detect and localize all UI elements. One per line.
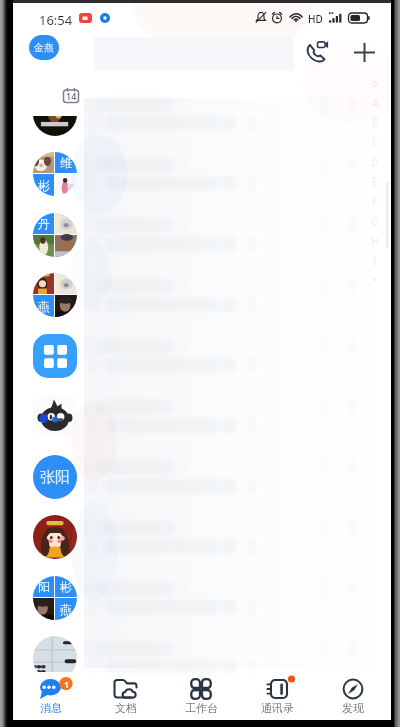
- staticText: 燕: [60, 602, 72, 617]
- staticText: 彬: [60, 579, 72, 594]
- staticText: 文档: [115, 701, 137, 715]
- button[interactable]: 1: [13, 673, 88, 720]
- button[interactable]: Video call: [299, 31, 337, 69]
- staticText: HD: [308, 12, 323, 26]
- staticText: F: [372, 194, 378, 208]
- staticText: 燕: [38, 299, 50, 314]
- button[interactable]: [15, 629, 97, 672]
- button[interactable]: 张阳: [15, 448, 97, 506]
- staticText: G: [371, 214, 379, 228]
- button[interactable]: 丹: [15, 206, 97, 264]
- button[interactable]: [15, 508, 97, 566]
- staticText: 通讯录: [261, 701, 294, 715]
- staticText: 1: [64, 678, 70, 690]
- button[interactable]: 工作台: [163, 673, 239, 720]
- button[interactable]: Add: [345, 31, 383, 69]
- staticText: 发现: [342, 701, 364, 715]
- staticText: 金燕: [34, 41, 54, 54]
- staticText: 张阳: [40, 468, 70, 487]
- button[interactable]: 通讯录: [239, 673, 315, 720]
- staticText: 维: [60, 155, 72, 170]
- staticText: B: [372, 115, 379, 129]
- staticText: 彬: [38, 178, 50, 193]
- button[interactable]: 燕: [15, 266, 97, 324]
- button[interactable]: Calendar: [57, 81, 85, 109]
- button[interactable]: 发现: [315, 673, 391, 720]
- button[interactable]: [15, 327, 97, 385]
- button[interactable]: [15, 387, 97, 445]
- button[interactable]: 维: [15, 145, 97, 203]
- staticText: 14: [66, 90, 77, 102]
- staticText: 16:54: [39, 11, 73, 29]
- staticText: E: [372, 175, 378, 189]
- staticText: D: [371, 155, 379, 169]
- staticText: 阳: [38, 579, 50, 594]
- button[interactable]: Profile: [29, 35, 59, 60]
- staticText: 丹: [38, 216, 50, 231]
- staticText: I: [373, 254, 377, 268]
- button[interactable]: 文档: [88, 673, 163, 720]
- button[interactable]: [15, 116, 97, 143]
- staticText: C: [372, 135, 379, 149]
- staticText: 消息: [40, 701, 62, 715]
- staticText: H: [371, 234, 379, 248]
- staticText: 工作台: [185, 701, 218, 715]
- staticText: A: [372, 96, 379, 110]
- button[interactable]: 阳: [15, 569, 97, 627]
